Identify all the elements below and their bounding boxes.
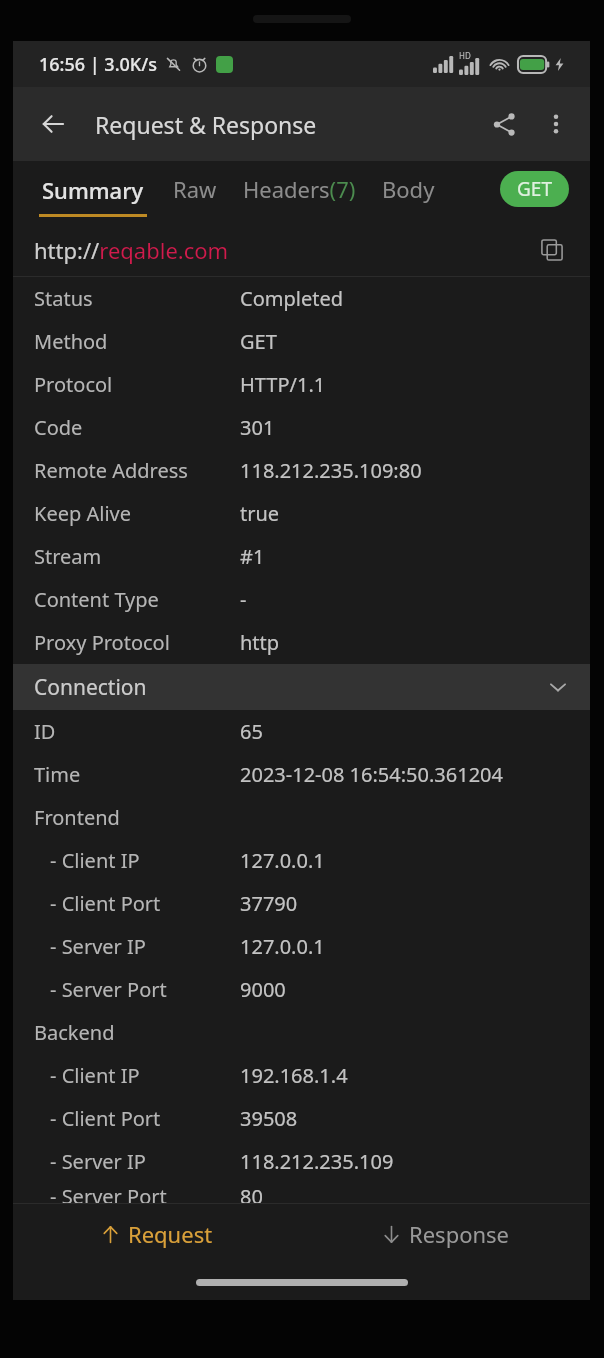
- staticText: 127.0.0.1: [240, 933, 325, 960]
- staticText: Response: [409, 1219, 510, 1249]
- staticText: HTTP/1.1: [240, 371, 326, 398]
- button[interactable]: Stream: [13, 535, 590, 578]
- staticText: Completed: [240, 285, 343, 312]
- button[interactable]: Copy URL: [530, 228, 574, 272]
- staticText: 127.0.0.1: [240, 847, 325, 874]
- staticText: Request & Response: [95, 109, 317, 140]
- staticText: - Server IP: [50, 1148, 146, 1175]
- staticText: 65: [240, 718, 263, 745]
- staticText: http: [240, 629, 280, 656]
- staticText: Backend: [34, 1019, 115, 1046]
- staticText: Frontend: [34, 804, 120, 831]
- button[interactable]: Connection: [13, 664, 590, 710]
- button[interactable]: Status: [13, 277, 590, 320]
- button[interactable]: - Client IP: [13, 1054, 590, 1097]
- button[interactable]: Code: [13, 406, 590, 449]
- button[interactable]: Remote Address: [13, 449, 590, 492]
- button[interactable]: Response: [301, 1204, 590, 1264]
- button[interactable]: Raw: [167, 161, 223, 224]
- button[interactable]: - Client Port: [13, 882, 590, 925]
- staticText: 16:56 | 3.0K/s: [39, 52, 157, 77]
- staticText: HD: [459, 50, 471, 61]
- staticText: - Client Port: [50, 1105, 161, 1132]
- staticText: - Server Port: [50, 1183, 167, 1203]
- button[interactable]: Share: [478, 98, 530, 150]
- button[interactable]: - Server Port: [13, 968, 590, 1011]
- staticText: true: [240, 500, 280, 527]
- staticText: Body: [382, 174, 435, 204]
- staticText: 2023-12-08 16:54:50.361204: [240, 761, 503, 788]
- staticText: - Server Port: [50, 976, 167, 1003]
- button[interactable]: Headers(7): [237, 161, 362, 224]
- staticText: 118.212.235.109:80: [240, 457, 422, 484]
- button[interactable]: Time: [13, 753, 590, 796]
- staticText: - Client IP: [50, 847, 140, 874]
- button[interactable]: Proxy Protocol: [13, 621, 590, 664]
- button[interactable]: Request: [13, 1204, 301, 1264]
- button[interactable]: Backend: [13, 1011, 590, 1054]
- button[interactable]: More options: [530, 98, 582, 150]
- staticText: Raw: [173, 174, 217, 204]
- staticText: 118.212.235.109: [240, 1148, 394, 1175]
- staticText: Summary: [42, 175, 144, 205]
- staticText: Proxy Protocol: [34, 629, 170, 656]
- staticText: GET: [517, 176, 552, 202]
- staticText: #1: [240, 543, 265, 570]
- button[interactable]: Protocol: [13, 363, 590, 406]
- staticText: 80: [240, 1183, 263, 1203]
- button[interactable]: - Client Port: [13, 1097, 590, 1140]
- staticText: ID: [34, 718, 56, 745]
- button[interactable]: - Server Port: [13, 1183, 590, 1203]
- staticText: 37790: [240, 890, 298, 917]
- staticText: -: [240, 586, 247, 613]
- staticText: - Client IP: [50, 1062, 140, 1089]
- staticText: Protocol: [34, 371, 113, 398]
- button[interactable]: Frontend: [13, 796, 590, 839]
- staticText: Method: [34, 328, 108, 355]
- staticText: Status: [34, 285, 93, 312]
- staticText: Code: [34, 414, 83, 441]
- button[interactable]: - Server IP: [13, 1140, 590, 1183]
- staticText: 301: [240, 414, 275, 441]
- staticText: 9000: [240, 976, 286, 1003]
- staticText: http://reqable.com: [34, 235, 229, 265]
- button[interactable]: Summary: [33, 161, 153, 224]
- staticText: GET: [240, 328, 277, 355]
- staticText: 192.168.1.4: [240, 1062, 348, 1089]
- staticText: Time: [34, 761, 81, 788]
- staticText: Content Type: [34, 586, 159, 613]
- button[interactable]: ID: [13, 710, 590, 753]
- staticText: Headers(7): [243, 174, 356, 204]
- staticText: Connection: [34, 673, 147, 702]
- button[interactable]: Content Type: [13, 578, 590, 621]
- button[interactable]: Back: [29, 100, 77, 148]
- staticText: 39508: [240, 1105, 298, 1132]
- staticText: Remote Address: [34, 457, 188, 484]
- button[interactable]: Method: [13, 320, 590, 363]
- staticText: Request: [128, 1219, 213, 1249]
- staticText: Stream: [34, 543, 102, 570]
- staticText: - Client Port: [50, 890, 161, 917]
- staticText: - Server IP: [50, 933, 146, 960]
- staticText: Keep Alive: [34, 500, 131, 527]
- button[interactable]: - Server IP: [13, 925, 590, 968]
- button[interactable]: GET: [500, 171, 569, 207]
- button[interactable]: Keep Alive: [13, 492, 590, 535]
- button[interactable]: Body: [376, 161, 441, 224]
- button[interactable]: - Client IP: [13, 839, 590, 882]
